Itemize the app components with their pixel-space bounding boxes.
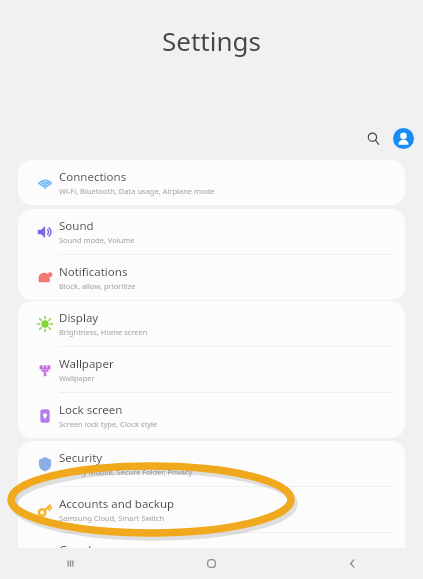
button[interactable]: Google [18,533,405,578]
button[interactable]: Recents [0,548,141,579]
button[interactable]: Wallpaper [18,347,405,392]
button[interactable]: Notifications [18,255,405,300]
staticText: Accounts and backup [59,496,175,512]
staticText: Wallpaper [59,373,95,383]
button[interactable]: Home [141,548,282,579]
staticText: Block, allow, prioritize [59,281,136,291]
button[interactable]: Sound [18,209,405,254]
button[interactable]: Account [389,124,417,152]
staticText: Screen lock type, Clock style [59,419,158,429]
staticText: Sound mode, Volume [59,235,135,245]
staticText: Notifications [59,264,128,280]
button[interactable]: Security [18,441,405,486]
button[interactable]: Display [18,301,405,346]
staticText: Display [59,310,99,326]
button[interactable]: Search [359,124,387,152]
staticText: Connections [59,169,127,185]
staticText: Samsung Cloud, Smart Switch [59,513,165,523]
staticText: Find My Mobile, Secure Folder, Privacy [59,467,193,477]
button[interactable]: Accounts and backup [18,487,405,532]
button[interactable]: Connections [18,160,405,205]
staticText: Sound [59,218,94,234]
staticText: Wi-Fi, Bluetooth, Data usage, Airplane m… [59,186,215,196]
staticText: Wallpaper [59,356,114,372]
staticText: Lock screen [59,402,123,418]
staticText: Google settings [59,559,115,569]
staticText: Google [59,542,98,558]
staticText: Security [59,450,103,466]
button[interactable]: Lock screen [18,393,405,438]
button[interactable]: Back [282,548,423,579]
staticText: Brightness, Home screen [59,327,148,337]
staticText: Settings [162,23,261,58]
